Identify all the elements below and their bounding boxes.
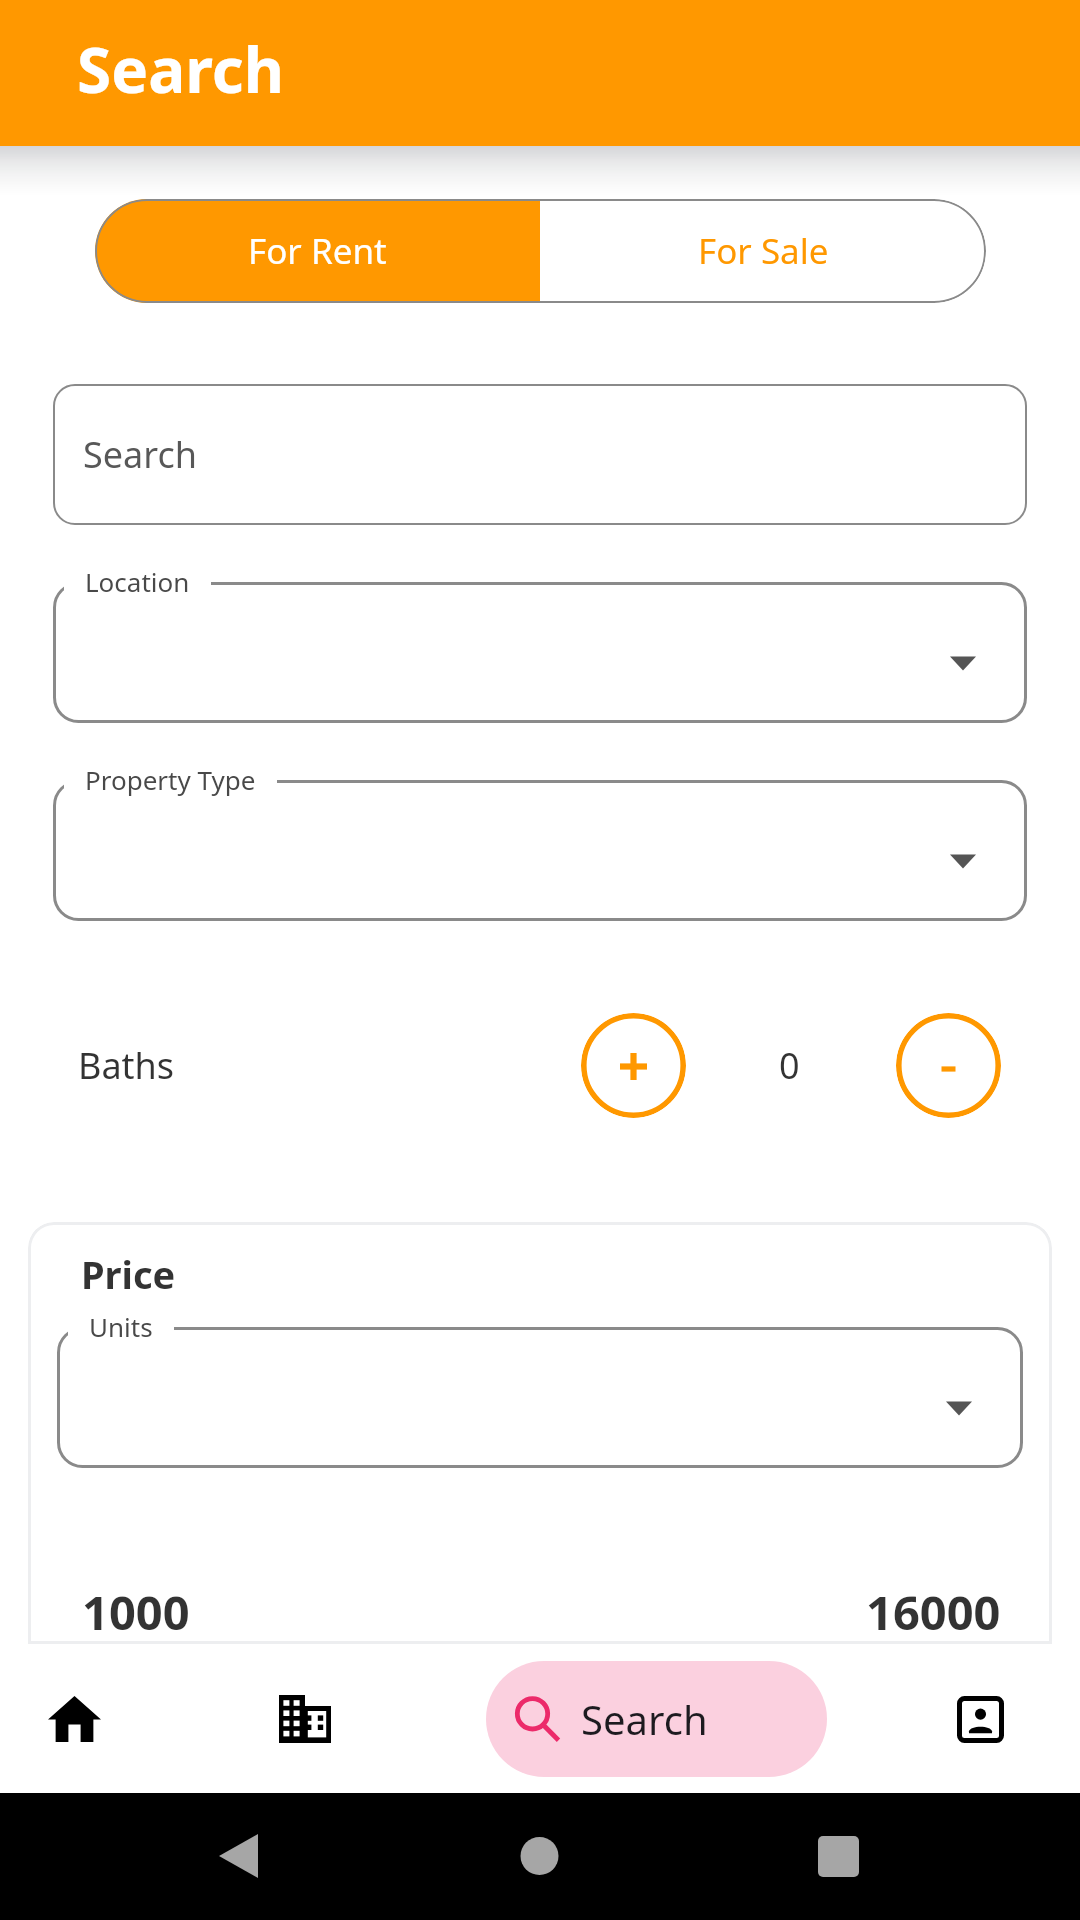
staticText: Location (85, 564, 190, 599)
staticText: Search (83, 430, 197, 479)
staticText: Baths (78, 1041, 175, 1090)
staticText: Property Type (85, 762, 256, 797)
button[interactable]: For Rent (95, 199, 540, 303)
button[interactable]: Units (57, 1327, 1023, 1468)
staticText: Search (77, 27, 285, 111)
button[interactable]: Properties (277, 1691, 333, 1747)
button[interactable]: Home (44, 1689, 104, 1749)
staticText: 0 (779, 1041, 800, 1090)
button[interactable]: For Sale (540, 199, 986, 303)
button[interactable]: Search (486, 1661, 827, 1777)
staticText: Search (581, 1692, 708, 1746)
button[interactable]: Search (53, 384, 1027, 525)
staticText: Units (89, 1309, 153, 1344)
staticText: 1000 (82, 1580, 190, 1644)
staticText: For Sale (698, 227, 829, 275)
staticText: For Rent (248, 227, 387, 275)
button[interactable]: Account (952, 1691, 1008, 1747)
staticText: Price (81, 1248, 176, 1300)
staticText: 16000 (866, 1580, 1001, 1644)
button[interactable]: Decrease baths (896, 1013, 1001, 1118)
button[interactable]: Location (53, 582, 1027, 723)
button[interactable]: Increase baths (581, 1013, 686, 1118)
button[interactable]: Property Type (53, 780, 1027, 921)
